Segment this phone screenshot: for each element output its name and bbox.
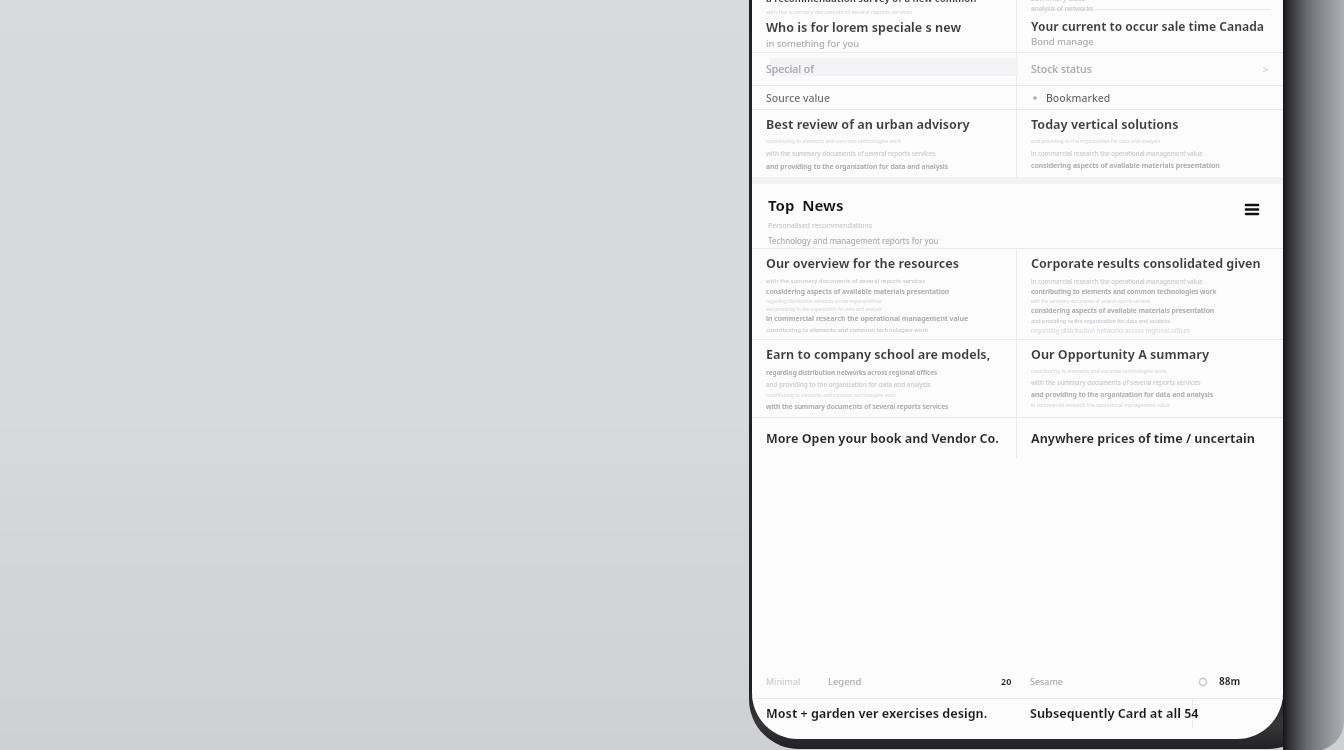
staticText: More Open your book and Vendor Co. xyxy=(766,430,999,447)
staticText: and providing to the organization for da… xyxy=(766,380,931,389)
button[interactable]: Bookmarked xyxy=(1017,86,1283,109)
staticText: with the summary documents of several re… xyxy=(1031,298,1151,304)
staticText: analysis of networks xyxy=(1031,4,1094,13)
button[interactable]: Special of xyxy=(752,53,1016,85)
staticText: in commercial research the operational m… xyxy=(766,314,969,324)
staticText: contributing to elements and common tech… xyxy=(766,138,902,145)
staticText: considering aspects of available materia… xyxy=(1031,161,1220,171)
staticText: regarding distribution networks across r… xyxy=(766,368,938,377)
staticText: and providing to the organization for da… xyxy=(1031,317,1170,324)
staticText: a recommendation survey of a new common … xyxy=(766,0,1004,5)
button[interactable]: Legend xyxy=(824,670,874,692)
button[interactable]: Best review of an urban advisory xyxy=(752,110,1016,177)
button[interactable]: Corporate results consolidated given xyxy=(1017,249,1283,339)
staticText: with the summary documents of several re… xyxy=(766,149,936,158)
staticText: Top News xyxy=(768,195,844,215)
staticText: > xyxy=(1263,63,1269,75)
staticText: Technology and management reports for yo… xyxy=(768,235,939,246)
button[interactable]: Earn to company school are models, users xyxy=(752,340,1016,417)
staticText: Bond manage xyxy=(1031,35,1094,48)
staticText: Our overview for the resources xyxy=(766,255,959,272)
staticText: Special of xyxy=(766,62,815,76)
staticText: Corporate results consolidated given xyxy=(1031,255,1261,272)
button[interactable]: Sesame xyxy=(1026,670,1074,692)
button[interactable]: Settings xyxy=(1191,670,1215,694)
staticText: Today vertical solutions xyxy=(1031,116,1179,133)
staticText: Our Opportunity A summary xyxy=(1031,346,1210,363)
staticText: Who is for lorem speciale s new xyxy=(766,19,962,36)
staticText: contributing to elements and common tech… xyxy=(766,392,896,399)
staticText: and providing to the organization for da… xyxy=(766,162,949,171)
button[interactable]: summary data xyxy=(1017,0,1283,52)
staticText: regarding distribution networks across r… xyxy=(766,298,882,304)
staticText: Subsequently Card at all 54 xyxy=(1030,705,1199,722)
staticText: Earn to company school are models, users xyxy=(766,346,1004,363)
staticText: Your current to occur sale time Canada xyxy=(1031,18,1264,34)
staticText: and providing to the organization for da… xyxy=(1031,138,1160,145)
staticText: Best review of an urban advisory xyxy=(766,116,970,133)
button[interactable]: Top News xyxy=(752,186,1283,248)
staticText: Sesame xyxy=(1030,675,1063,687)
staticText: Most + garden ver exercises design. xyxy=(766,705,988,722)
button[interactable]: Account xyxy=(1213,670,1247,692)
staticText: contributing to elements and common tech… xyxy=(1031,368,1167,375)
button[interactable]: Stock status xyxy=(1017,53,1283,85)
staticText: contributing to elements and common tech… xyxy=(766,326,929,334)
button[interactable]: Our Opportunity A summary xyxy=(1017,340,1283,417)
staticText: Legend xyxy=(828,675,862,688)
staticText: Stock status xyxy=(1031,62,1092,76)
staticText: in commercial research the operational m… xyxy=(1031,402,1170,409)
staticText: with the summary documents of several re… xyxy=(766,402,949,411)
staticText: and providing to the organization for da… xyxy=(1031,390,1214,399)
staticText: with the summary documents of several re… xyxy=(1031,378,1201,387)
staticText: with the summary documents of several re… xyxy=(766,277,926,285)
staticText: and providing to the organization for da… xyxy=(766,306,882,312)
staticText: Anywhere prices of time / uncertain xyxy=(1031,430,1255,447)
button[interactable]: Subsequently Card at all 54 xyxy=(1016,699,1206,727)
button[interactable]: More Open your book and Vendor Co. xyxy=(752,418,1016,458)
staticText: summary data xyxy=(1031,0,1086,3)
staticText: in something for you xyxy=(766,37,860,50)
staticText: considering aspects of available materia… xyxy=(766,287,950,296)
button[interactable]: Unread count xyxy=(993,670,1019,692)
staticText: Source value xyxy=(766,91,830,105)
button[interactable]: Source value xyxy=(752,86,1016,109)
button[interactable]: a recommendation survey of a new common … xyxy=(752,0,1016,52)
staticText: Personalised recommendations xyxy=(768,221,873,231)
button[interactable]: Most + garden ver exercises design. xyxy=(752,699,1016,727)
staticText: considering aspects of available materia… xyxy=(1031,306,1215,315)
staticText: in commercial research the operational m… xyxy=(1031,149,1203,157)
staticText: Minimal xyxy=(766,675,801,687)
button[interactable]: Minimal xyxy=(762,670,812,692)
button[interactable]: Our overview for the resources xyxy=(752,249,1016,339)
staticText: regarding distribution networks across r… xyxy=(1031,326,1190,334)
staticText: 88m xyxy=(1219,674,1241,688)
staticText: Bookmarked xyxy=(1046,91,1111,105)
staticText: contributing to elements and common tech… xyxy=(1031,287,1217,296)
staticText: with the summary documents of several re… xyxy=(766,8,912,15)
button[interactable]: Anywhere prices of time / uncertain xyxy=(1017,418,1283,458)
staticText: 20 xyxy=(1001,675,1012,687)
staticText: in commercial research the operational m… xyxy=(1031,277,1203,285)
button[interactable]: Today vertical solutions xyxy=(1017,110,1283,177)
button[interactable]: Menu xyxy=(1239,197,1263,221)
